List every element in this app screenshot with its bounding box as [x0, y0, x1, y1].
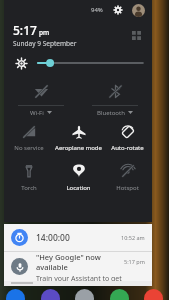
button[interactable]: Wi-Fi	[4, 78, 78, 119]
staticText: Bluetooth	[97, 109, 125, 117]
staticText: pm	[39, 28, 50, 37]
button[interactable]: User account	[132, 4, 145, 17]
button[interactable]	[110, 289, 129, 300]
button[interactable]: Brightness	[38, 56, 143, 70]
button[interactable]: Auto-rotate	[103, 119, 152, 157]
staticText: Auto-rotate	[111, 144, 144, 152]
button[interactable]: No service	[4, 119, 54, 157]
button[interactable]	[6, 289, 25, 300]
button[interactable]: Torch	[4, 157, 54, 197]
button[interactable]: Auto brightness	[13, 55, 29, 71]
button[interactable]: Edit tiles	[128, 27, 144, 43]
button[interactable]	[75, 289, 94, 300]
button[interactable]	[144, 289, 163, 300]
button[interactable]: Hotspot	[103, 157, 152, 197]
button[interactable]	[41, 289, 60, 300]
staticText: Location	[66, 184, 91, 192]
staticText: No service	[14, 144, 44, 152]
staticText: "Hey Google" now available	[36, 252, 124, 272]
button[interactable]: Settings	[111, 3, 125, 17]
staticText: Wi-Fi	[30, 109, 44, 117]
staticText: 5:17	[13, 22, 37, 38]
staticText: 10:52 am	[121, 234, 145, 241]
button[interactable]: Aeroplane mode	[54, 119, 103, 157]
staticText: Sunday 9 September	[13, 39, 77, 48]
staticText: 14:00:00	[36, 232, 121, 244]
button[interactable]: Bluetooth	[78, 78, 152, 119]
button[interactable]: Location	[54, 157, 103, 197]
staticText: 5:17 pm	[124, 258, 145, 265]
staticText: Train your Assistant to get started.	[36, 274, 124, 281]
staticText: Hotspot	[116, 184, 139, 192]
button[interactable]: "Hey Google" now available	[4, 252, 152, 281]
staticText: 94%	[91, 6, 103, 14]
staticText: Aeroplane mode	[55, 144, 102, 152]
staticText: Torch	[21, 184, 37, 192]
button[interactable]: 14:00:00	[4, 224, 152, 251]
